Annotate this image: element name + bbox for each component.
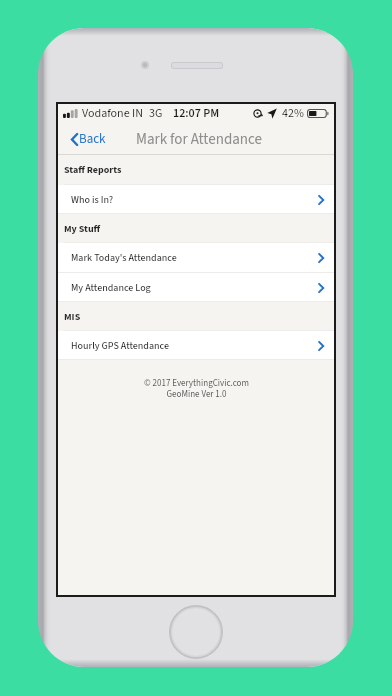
staticText: 3G [149,105,163,122]
staticText: 42% [282,105,304,122]
staticText: Staff Reports [64,163,122,177]
staticText: My Attendance Log [71,281,151,295]
button[interactable]: Mark Today's Attendance [58,243,334,273]
staticText: My Stuff [64,222,101,236]
staticText: Vodafone IN [82,105,143,122]
button[interactable]: My Attendance Log [58,273,334,302]
staticText: MIS [64,310,81,324]
staticText: Mark Today's Attendance [71,251,177,265]
staticText: Hourly GPS Attendance [71,339,169,353]
button[interactable]: Hourly GPS Attendance [58,331,334,360]
button[interactable]: Who is In? [58,185,334,214]
button[interactable]: Back [58,126,112,153]
staticText: 12:07 PM [173,105,220,122]
staticText: Back [79,130,106,149]
staticText: Mark for Attendance [136,129,262,150]
staticText: Who is In? [71,193,114,207]
other: Location services [253,109,263,118]
staticText: © 2017 EverythingCivic.com GeoMine Ver 1… [144,377,249,401]
